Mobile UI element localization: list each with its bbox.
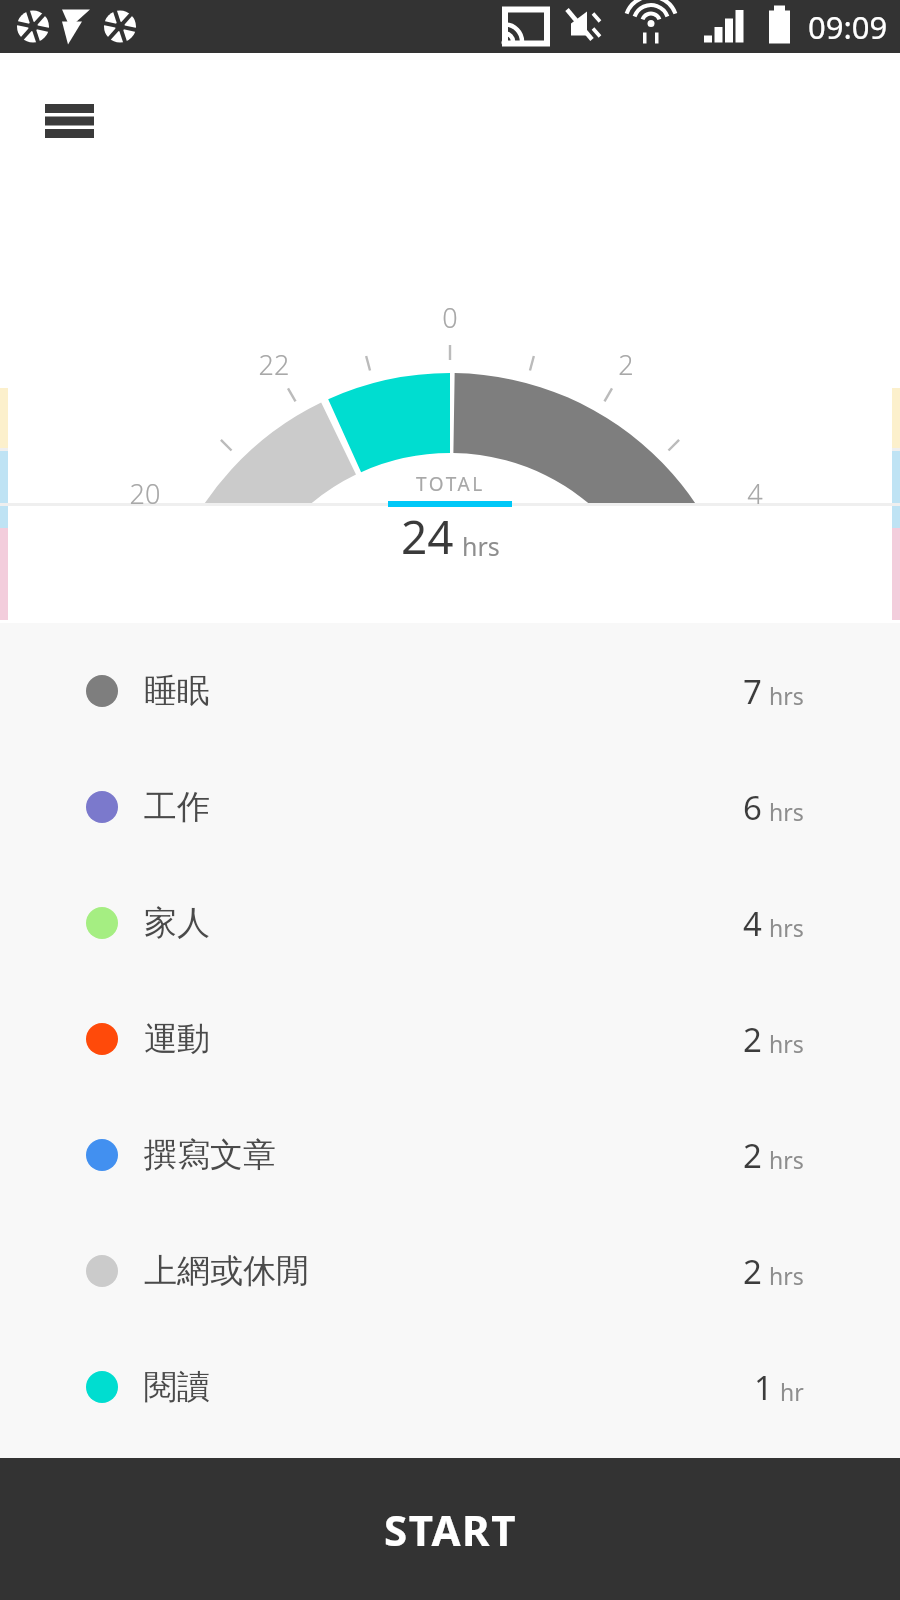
button[interactable]: 工作 — [0, 749, 900, 865]
staticText: 6 — [743, 785, 762, 830]
staticText: 睡眠 — [144, 670, 210, 712]
staticText: 1 — [754, 1365, 773, 1410]
staticText: 2 — [743, 1249, 762, 1294]
staticText: 撰寫文章 — [144, 1134, 276, 1176]
staticText: 7 — [743, 669, 762, 714]
staticText: 閱讀 — [144, 1366, 210, 1408]
button[interactable]: START — [0, 1458, 900, 1600]
staticText: hrs — [769, 1028, 804, 1059]
staticText: 工作 — [144, 786, 210, 828]
button[interactable]: 上網或休閒 — [0, 1213, 900, 1329]
staticText: 24 — [401, 505, 454, 568]
button[interactable]: Menu — [23, 75, 115, 167]
button[interactable]: 家人 — [0, 865, 900, 981]
staticText: 2 — [743, 1133, 762, 1178]
staticText: hrs — [462, 529, 500, 563]
staticText: 2 — [614, 346, 638, 383]
staticText: hrs — [769, 1260, 804, 1291]
staticText: START — [384, 1501, 517, 1558]
staticText: hrs — [769, 912, 804, 943]
staticText: hrs — [769, 1144, 804, 1175]
staticText: 2 — [743, 1017, 762, 1062]
staticText: hrs — [769, 796, 804, 827]
staticText: hr — [780, 1376, 804, 1407]
staticText: 上網或休閒 — [144, 1250, 309, 1292]
staticText: 09:09 — [808, 6, 888, 48]
staticText: hrs — [769, 680, 804, 711]
staticText: 家人 — [144, 902, 210, 944]
button[interactable]: 睡眠 — [0, 633, 900, 749]
staticText: 運動 — [144, 1018, 210, 1060]
staticText: 4 — [743, 475, 767, 512]
button[interactable]: 運動 — [0, 981, 900, 1097]
staticText: 4 — [743, 901, 762, 946]
staticText: 22 — [252, 346, 296, 383]
staticText: 20 — [123, 475, 167, 512]
button[interactable]: 閱讀 — [0, 1329, 900, 1445]
staticText: TOTAL — [416, 471, 485, 497]
staticText: 0 — [438, 299, 462, 336]
button[interactable]: 撰寫文章 — [0, 1097, 900, 1213]
